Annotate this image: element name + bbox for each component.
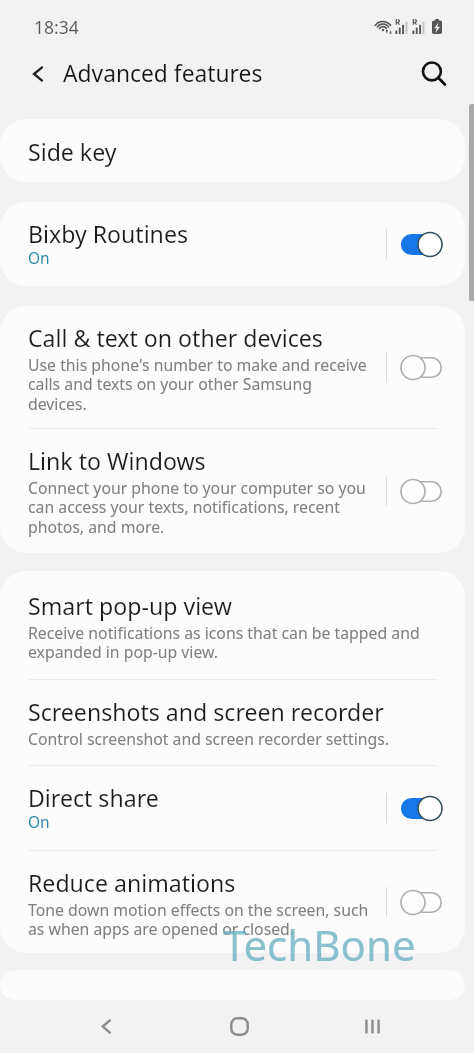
button[interactable]: Direct share	[0, 766, 465, 850]
button[interactable]: Toggle Bixby Routines	[386, 202, 465, 286]
staticText: Screenshots and screen recorder	[28, 696, 384, 727]
staticText: Reduce animations	[28, 867, 236, 898]
button[interactable]: Link to Windows	[0, 429, 465, 553]
staticText: Tone down motion effects on the screen, …	[28, 899, 373, 940]
button[interactable]: Screenshots and screen recorder	[0, 680, 465, 765]
staticText: TechBone	[223, 916, 416, 973]
staticText: Connect your phone to your computer so y…	[28, 477, 373, 538]
button[interactable]: Home	[207, 1000, 271, 1053]
staticText: Advanced features	[63, 58, 263, 89]
button[interactable]: Back	[74, 1000, 138, 1053]
button[interactable]: Call & text on other devices	[0, 306, 465, 428]
button[interactable]: Toggle Direct share	[386, 766, 465, 850]
button[interactable]: Bixby Routines	[0, 202, 465, 286]
button[interactable]: Toggle Link to Windows	[386, 429, 465, 553]
staticText: Receive notifications as icons that can …	[28, 622, 427, 663]
staticText: Bixby Routines	[28, 218, 188, 249]
staticText: 18:34	[34, 15, 79, 39]
button[interactable]: Toggle Reduce animations	[386, 851, 465, 953]
staticText: Smart pop-up view	[28, 590, 232, 621]
staticText: Control screenshot and screen recorder s…	[28, 728, 390, 750]
staticText: Use this phone's number to make and rece…	[28, 354, 373, 415]
button[interactable]: Back	[22, 58, 54, 90]
staticText: Side key	[28, 136, 117, 167]
staticText: Call & text on other devices	[28, 322, 323, 353]
staticText: Link to Windows	[28, 445, 206, 476]
button[interactable]: Toggle Call & text on other devices	[386, 306, 465, 428]
button[interactable]: Side key	[0, 119, 465, 182]
staticText: Direct share	[28, 782, 159, 813]
staticText: On	[28, 247, 50, 268]
staticText: On	[28, 811, 50, 832]
button[interactable]: Recent apps	[340, 1000, 404, 1053]
button[interactable]: Reduce animations	[0, 851, 465, 953]
button[interactable]: Search	[414, 54, 454, 94]
button[interactable]: Smart pop-up view	[0, 571, 465, 679]
